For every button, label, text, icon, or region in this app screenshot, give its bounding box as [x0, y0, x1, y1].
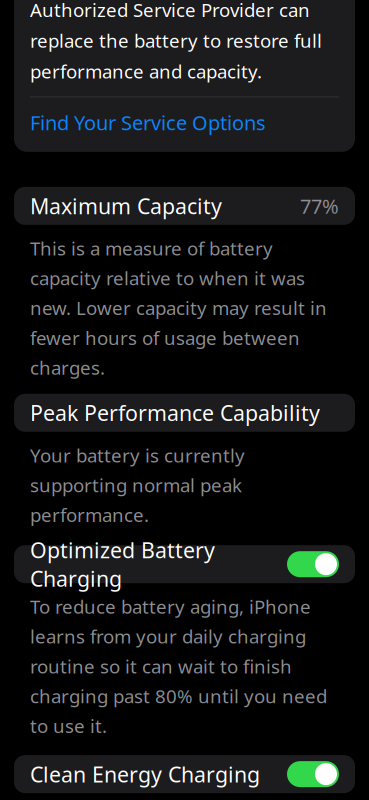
staticText: Maximum Capacity [30, 192, 222, 220]
button[interactable]: Clean Energy Charging [14, 755, 355, 793]
staticText: Clean Energy Charging [30, 760, 260, 788]
staticText: Optimized Battery Charging [30, 536, 215, 593]
staticText: Your battery is currently supporting nor… [30, 443, 245, 527]
staticText: 77% [300, 193, 339, 219]
staticText: This is a measure of battery capacity re… [30, 236, 327, 380]
button[interactable]: Peak Performance Capability [14, 394, 355, 432]
button[interactable]: Find Your Service Options [30, 97, 339, 148]
staticText: Your battery's health is significantly d… [30, 0, 322, 84]
staticText: Peak Performance Capability [30, 399, 320, 427]
button[interactable]: Maximum Capacity [14, 187, 355, 225]
staticText: Find Your Service Options [30, 109, 266, 136]
staticText: To reduce battery aging, iPhone learns f… [30, 594, 327, 738]
button[interactable]: Optimized Battery Charging [14, 545, 355, 583]
